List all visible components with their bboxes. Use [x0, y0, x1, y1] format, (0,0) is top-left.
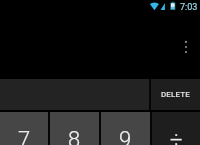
staticText: 7 — [18, 127, 31, 145]
button[interactable]: 9 — [101, 112, 150, 145]
button[interactable]: More options — [178, 37, 194, 57]
staticText: DELETE — [161, 90, 190, 99]
staticText: 9 — [119, 127, 132, 145]
button[interactable]: 7 — [0, 112, 48, 145]
button[interactable]: ÷ — [152, 112, 200, 145]
staticText: 8 — [68, 127, 81, 145]
button[interactable]: 8 — [50, 112, 99, 145]
button[interactable]: DELETE — [151, 79, 200, 110]
staticText: 7:03 — [180, 2, 198, 13]
staticText: ÷ — [170, 127, 183, 145]
